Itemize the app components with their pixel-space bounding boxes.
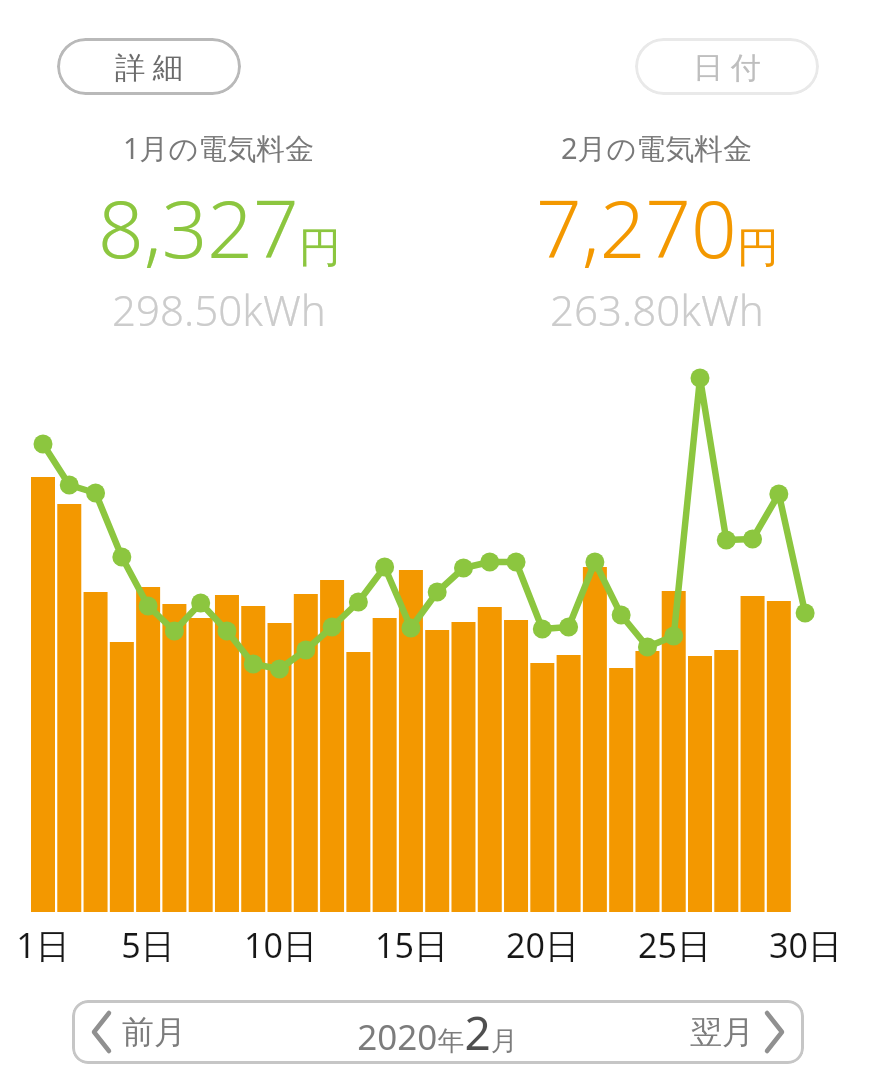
button[interactable]: 翌月 (518, 1000, 804, 1064)
staticText: 前月 (122, 1012, 186, 1052)
button[interactable]: 前月 (72, 1000, 357, 1064)
staticText: 20日 (506, 922, 579, 968)
staticText: 円 (737, 222, 779, 275)
staticText: 日 付 (693, 46, 761, 87)
staticText: 10日 (244, 922, 317, 968)
staticText: 円 (299, 222, 341, 275)
staticText: 詳 細 (115, 46, 183, 87)
staticText: 7,270 (536, 172, 737, 281)
staticText: 15日 (375, 922, 448, 968)
button[interactable]: 日 付 (635, 38, 819, 95)
button[interactable]: 詳 細 (57, 38, 241, 95)
staticText: 1月の電気料金 (123, 128, 315, 168)
staticText: 25日 (638, 922, 711, 968)
staticText: 5日 (121, 922, 175, 968)
staticText: 298.50kWh (112, 281, 326, 338)
staticText: 1日 (16, 922, 70, 968)
staticText: 8,327 (98, 172, 299, 281)
staticText: 2月の電気料金 (561, 128, 753, 168)
staticText: 30日 (769, 922, 842, 968)
staticText: 263.80kWh (550, 281, 764, 338)
staticText: 2020年2月 (357, 1001, 518, 1064)
staticText: 翌月 (690, 1012, 754, 1052)
